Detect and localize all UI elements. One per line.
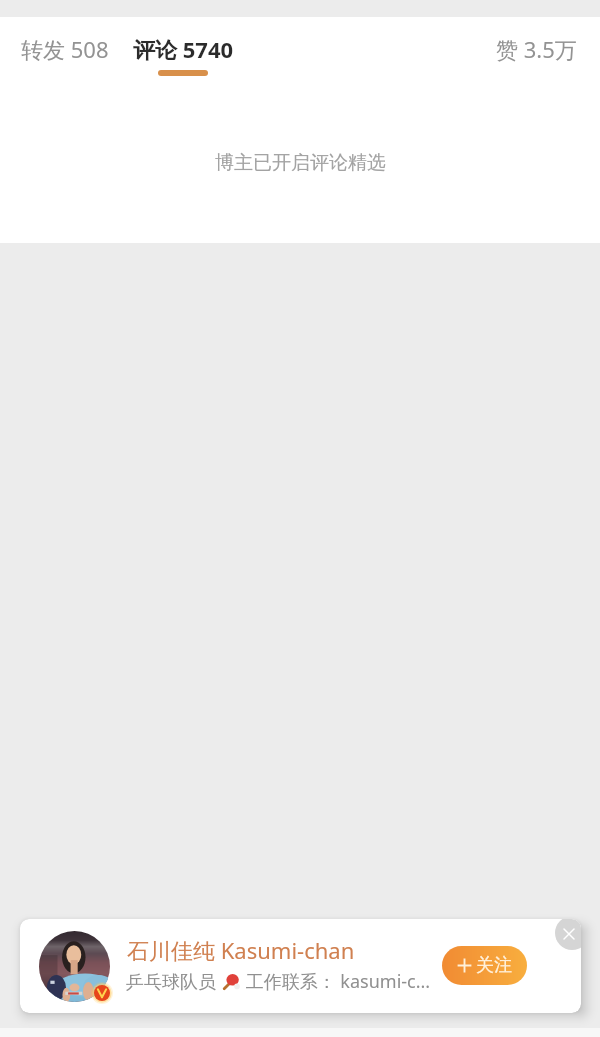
button[interactable]: 关注 [442, 946, 527, 985]
button[interactable]: 转发 508 [21, 34, 109, 64]
staticText: 石川佳纯 Kasumi-chan [127, 935, 355, 965]
staticText: 乒乓球队员 [126, 969, 221, 994]
staticText: 博主已开启评论精选 [215, 151, 386, 175]
button[interactable]: 关闭 [555, 919, 581, 950]
staticText: 关注 [476, 954, 512, 977]
button[interactable]: 评论 5740 [133, 34, 234, 64]
staticText: 赞 3.5万 [496, 34, 577, 64]
button[interactable]: 石川佳纯 Kasumi-chan [20, 919, 581, 1013]
staticText: 评论 5740 [133, 34, 234, 64]
button[interactable]: 赞 3.5万 [496, 34, 577, 64]
staticText: 转发 508 [21, 34, 109, 64]
staticText: 工作联系： kasumi-c... [241, 969, 431, 994]
